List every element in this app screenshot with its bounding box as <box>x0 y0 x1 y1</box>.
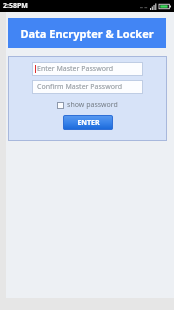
button[interactable]: Data Encrypter & Locker <box>8 18 166 48</box>
staticText: Enter Master Password <box>37 64 113 74</box>
button[interactable]: ENTER <box>63 115 113 130</box>
staticText: Confirm Master Password <box>37 82 122 92</box>
staticText: Data Encrypter & Locker <box>20 26 154 41</box>
button[interactable]: Enter Master Password <box>32 62 143 76</box>
staticText: 2:58PM <box>3 1 28 11</box>
staticText: ENTER <box>77 118 100 128</box>
button[interactable]: Confirm Master Password <box>32 80 143 94</box>
button[interactable]: show password <box>55 99 120 111</box>
staticText: show password <box>67 100 118 110</box>
